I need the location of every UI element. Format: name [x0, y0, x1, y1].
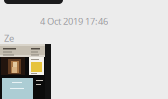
staticText: Ze [4, 32, 14, 44]
staticText: 4 Oct 2019 17:46 [40, 15, 108, 27]
button[interactable]: Photo attachment [0, 44, 168, 99]
